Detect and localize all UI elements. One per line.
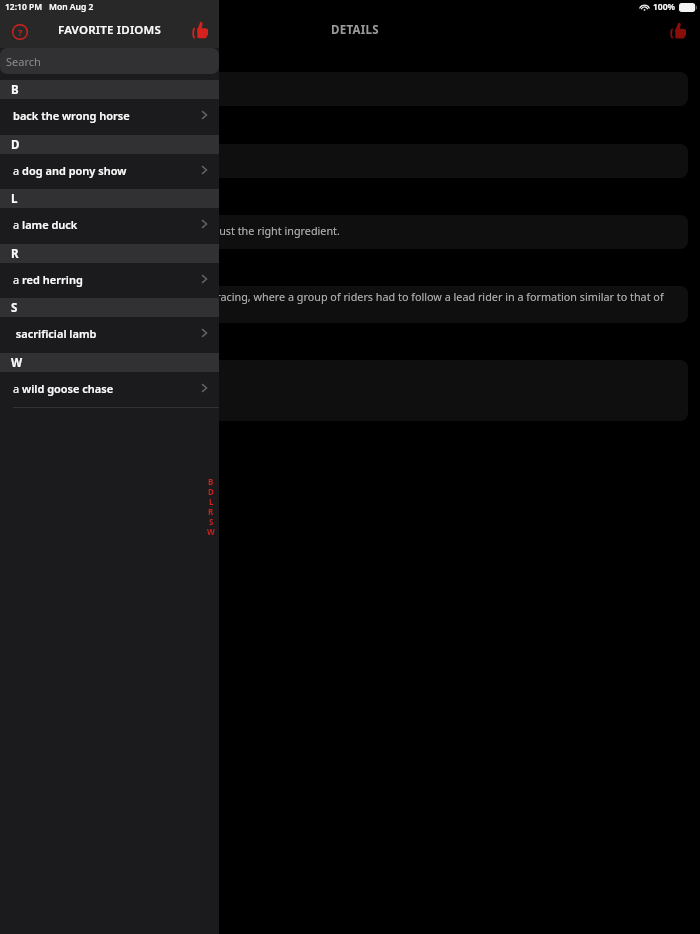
staticText: a wild goose chase xyxy=(13,381,114,396)
button[interactable]: back the wrong horse xyxy=(0,97,219,133)
staticText: Mon Aug 2 xyxy=(49,1,94,13)
staticText: An expression which means you need just … xyxy=(23,223,700,238)
staticText: sacrificial lamb xyxy=(13,326,97,341)
staticText: R xyxy=(208,506,214,516)
staticText: FAVORITE IDIOMS xyxy=(58,22,162,38)
staticText: L xyxy=(209,496,214,506)
button[interactable] xyxy=(12,215,688,249)
button[interactable] xyxy=(12,286,688,323)
staticText: B xyxy=(11,82,19,98)
staticText: ? xyxy=(18,26,23,38)
button[interactable] xyxy=(12,72,688,106)
button[interactable]: a wild goose chase xyxy=(0,370,219,406)
staticText: S xyxy=(209,516,214,526)
staticText: DETAILS xyxy=(331,22,379,38)
button[interactable]: Favorite xyxy=(188,18,212,42)
button[interactable]: Help xyxy=(8,20,32,44)
staticText: 100% xyxy=(653,1,676,13)
staticText: Search xyxy=(6,54,41,69)
button[interactable]: a dog and pony show xyxy=(0,152,219,188)
button[interactable] xyxy=(12,360,688,421)
staticText: a lame duck xyxy=(13,217,78,232)
button[interactable]: Search xyxy=(0,48,219,74)
staticText: back the wrong horse xyxy=(13,108,130,123)
staticText: a dog and pony show xyxy=(13,163,127,178)
staticText: W xyxy=(11,355,23,371)
button[interactable]: a lame duck xyxy=(0,206,219,242)
staticText: W xyxy=(207,526,215,536)
button[interactable]: Favorite xyxy=(666,19,690,43)
staticText: 12:10 PM xyxy=(5,1,43,13)
button[interactable]: a red herring xyxy=(0,261,219,297)
button[interactable]: sacrificial lamb xyxy=(0,315,219,351)
staticText: The expression originates from horse rac… xyxy=(24,289,700,304)
staticText: a red herring xyxy=(13,272,83,287)
staticText: D xyxy=(208,486,214,496)
staticText: S xyxy=(11,300,18,316)
staticText: R xyxy=(11,246,19,262)
staticText: D xyxy=(11,137,20,153)
staticText: B xyxy=(208,476,214,486)
staticText: L xyxy=(11,191,18,207)
button[interactable] xyxy=(12,144,688,178)
